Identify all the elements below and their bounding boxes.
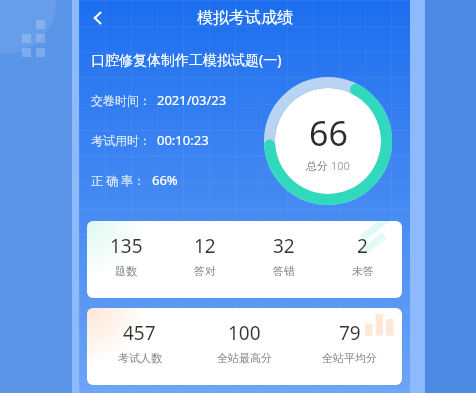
staticText: 135 xyxy=(110,233,143,259)
staticText: 457 xyxy=(123,320,156,346)
staticText: 66 xyxy=(309,110,348,156)
staticText: 答错 xyxy=(273,264,295,278)
staticText: 题数 xyxy=(115,264,137,278)
staticText: 正 确 率： xyxy=(91,172,146,188)
staticText: 100 xyxy=(331,158,350,173)
staticText: 全站最高分 xyxy=(217,351,272,365)
staticText: 2 xyxy=(357,233,368,259)
staticText: 总分 xyxy=(306,159,328,173)
staticText: 考试用时： xyxy=(91,133,151,148)
staticText: 66% xyxy=(152,171,178,189)
button[interactable]: 135 xyxy=(87,221,402,298)
staticText: 2021/03/23 xyxy=(157,91,227,109)
staticText: 考试人数 xyxy=(118,351,162,365)
staticText: 79 xyxy=(339,320,361,346)
button[interactable]: 457 xyxy=(87,308,402,385)
staticText: 交卷时间： xyxy=(91,93,151,108)
staticText: 00:10:23 xyxy=(157,131,209,149)
staticText: 100 xyxy=(228,320,261,346)
staticText: 未答 xyxy=(352,264,374,278)
staticText: 32 xyxy=(273,233,295,259)
staticText: 答对 xyxy=(194,264,216,278)
staticText: 口腔修复体制作工模拟试题(一) xyxy=(91,50,282,69)
button[interactable]: 返回 xyxy=(81,1,115,35)
staticText: 模拟考试成绩 xyxy=(197,8,293,28)
staticText: 12 xyxy=(194,233,216,259)
staticText: 全站平均分 xyxy=(322,351,377,365)
